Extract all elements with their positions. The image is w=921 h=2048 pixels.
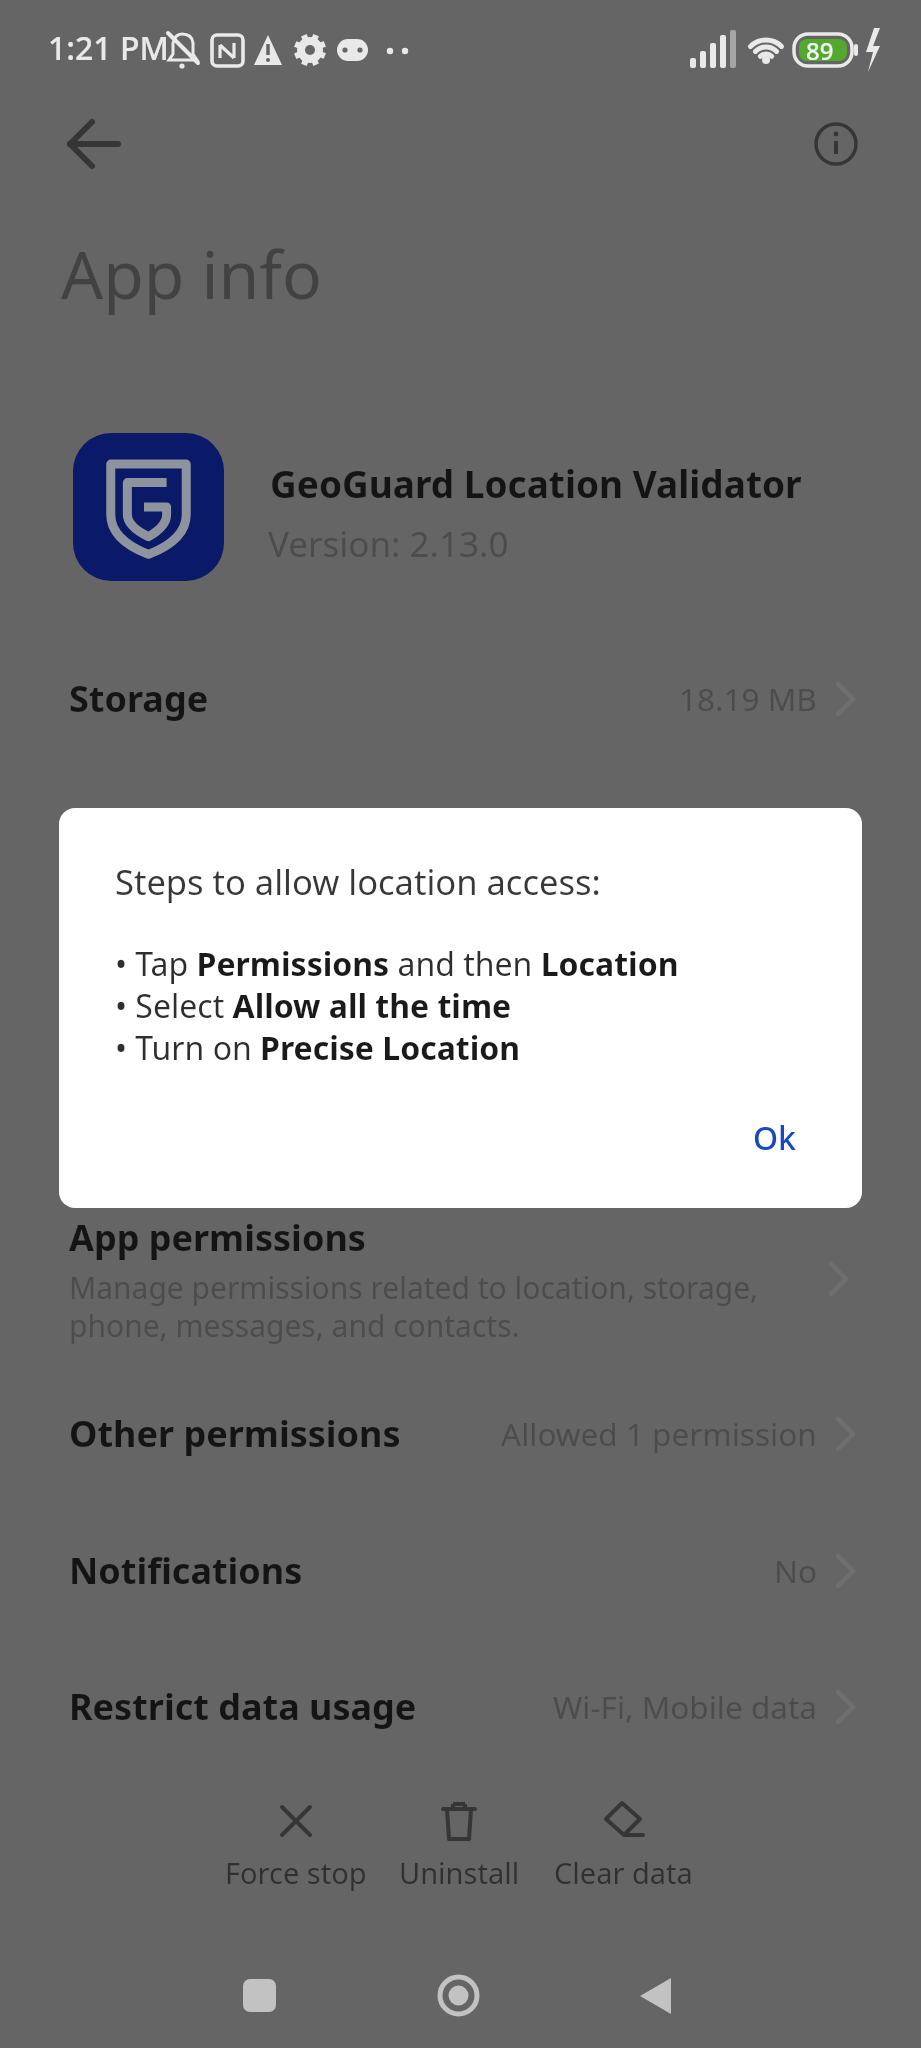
staticText: Allowed 1 permission — [501, 1412, 817, 1455]
button[interactable] — [437, 1974, 480, 2017]
button[interactable] — [638, 1977, 676, 2015]
staticText: Uninstall — [399, 1853, 520, 1892]
staticText: Storage — [69, 674, 209, 723]
staticText: Clear data — [554, 1853, 693, 1892]
staticText: Other permissions — [69, 1409, 401, 1458]
button[interactable]: Ok — [719, 1103, 829, 1173]
button[interactable]: Other permissions — [0, 1407, 921, 1459]
staticText: App info — [61, 228, 322, 318]
staticText: 1:21 PM — [48, 26, 169, 70]
staticText: App permissions — [69, 1213, 366, 1262]
staticText: Notifications — [69, 1546, 303, 1595]
staticText: Restrict data usage — [69, 1682, 417, 1731]
staticText: Manage permissions related to location, … — [69, 1267, 759, 1346]
button[interactable]: Uninstall — [369, 1801, 549, 1892]
button[interactable]: Storage — [0, 672, 921, 724]
staticText: • Tap Permissions and then Location • Se… — [115, 942, 679, 1069]
staticText: 89 — [806, 34, 834, 67]
staticText: Ok — [753, 1116, 796, 1160]
staticText: No — [774, 1549, 817, 1592]
button[interactable] — [62, 113, 124, 175]
staticText: GeoGuard Location Validator — [270, 458, 802, 508]
button[interactable]: Clear data — [533, 1801, 713, 1892]
staticText: Version: 2.13.0 — [268, 520, 509, 568]
button[interactable]: Force stop — [206, 1801, 386, 1892]
button[interactable]: Notifications — [0, 1544, 921, 1596]
button[interactable] — [813, 121, 859, 167]
staticText: 18.19 MB — [679, 677, 817, 720]
button[interactable] — [243, 1979, 276, 2012]
staticText: Steps to allow location access: — [115, 858, 601, 905]
button[interactable]: App permissions — [0, 1205, 921, 1345]
staticText: Wi-Fi, Mobile data — [553, 1685, 817, 1728]
staticText: Force stop — [225, 1853, 367, 1892]
button[interactable]: Restrict data usage — [0, 1680, 921, 1732]
